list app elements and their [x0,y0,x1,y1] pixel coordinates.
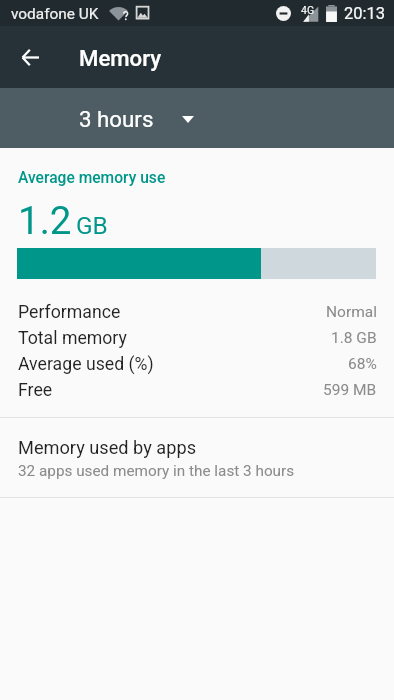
staticText: Total memory [18,328,127,349]
staticText: Performance [18,302,121,323]
staticText: Average used (%) [18,354,154,375]
button[interactable]: Memory used by apps [0,418,394,497]
button[interactable]: Performance [0,299,394,325]
staticText: 1.8 GB [331,329,377,347]
staticText: Normal [326,303,377,321]
button[interactable]: Total memory [0,325,394,351]
staticText: 32 apps used memory in the last 3 hours [18,462,295,480]
button[interactable]: 3 hours [71,96,202,142]
staticText: GB [76,211,108,240]
staticText: Average memory use [18,169,166,187]
staticText: 4G [301,4,315,16]
button[interactable]: Navigate up [8,34,54,80]
staticText: Memory used by apps [18,437,197,458]
staticText: 599 MB [323,381,377,399]
button[interactable]: Average used (%) [0,351,394,377]
staticText: Memory [79,45,162,71]
staticText: vodafone UK [11,5,99,23]
button[interactable]: Free [0,377,394,403]
staticText: 68% [348,355,377,373]
staticText: 1.2 [18,198,72,243]
staticText: 20:13 [344,4,386,23]
staticText: Free [18,380,53,401]
staticText: 3 hours [79,106,154,132]
